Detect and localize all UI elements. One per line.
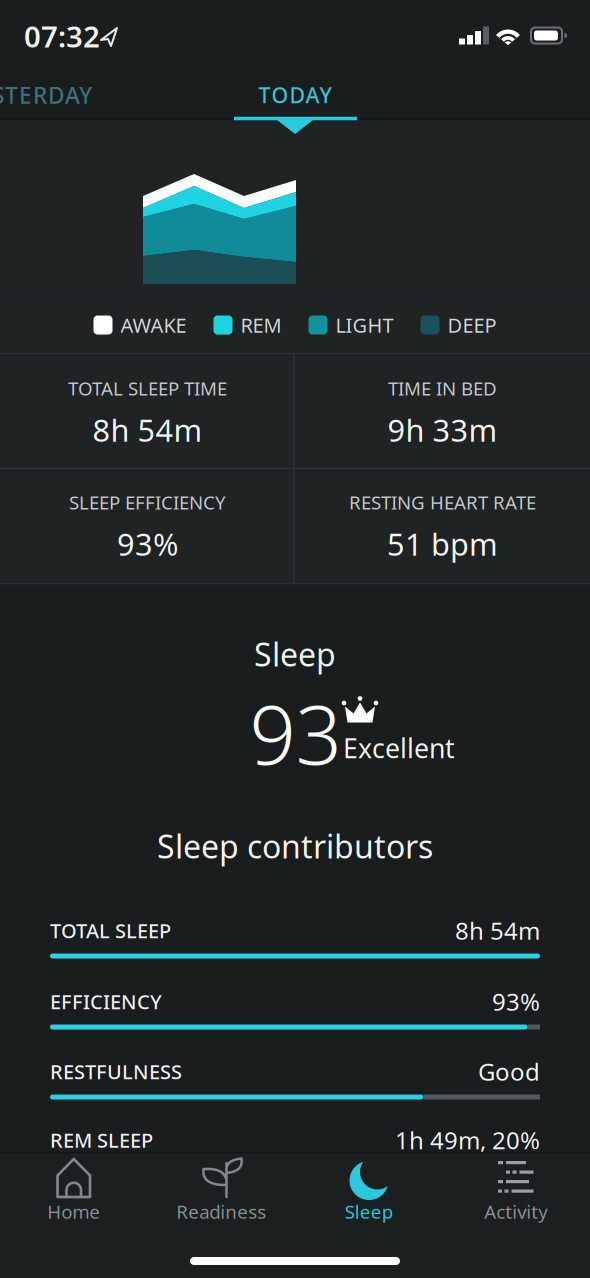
staticText: 93% xyxy=(117,523,178,564)
staticText: REM SLEEP xyxy=(50,1127,153,1153)
staticText: AWAKE xyxy=(120,312,186,338)
staticText: 8h 54m xyxy=(92,409,202,450)
staticText: Sleep xyxy=(254,633,336,675)
staticText: 1h 49m, 20% xyxy=(395,1124,540,1156)
staticText: REM xyxy=(240,312,281,338)
button[interactable]: YESTERDAY xyxy=(0,80,92,110)
staticText: LIGHT xyxy=(335,312,393,338)
staticText: Activity xyxy=(484,1199,548,1224)
staticText: 51 bpm xyxy=(387,523,498,564)
staticText: Excellent xyxy=(343,730,455,766)
button[interactable]: Sleep xyxy=(295,1152,442,1224)
staticText: 93% xyxy=(492,986,540,1017)
button[interactable]: Home xyxy=(0,1152,147,1224)
staticText: Readiness xyxy=(176,1199,266,1224)
staticText: Home xyxy=(47,1199,100,1224)
staticText: 93 xyxy=(249,679,341,787)
staticText: TIME IN BED xyxy=(388,376,497,400)
staticText: RESTING HEART RATE xyxy=(349,490,536,514)
button[interactable]: Activity xyxy=(443,1152,590,1224)
staticText: 07:32 xyxy=(24,16,100,55)
button[interactable]: Readiness xyxy=(148,1152,295,1224)
staticText: Good xyxy=(478,1056,540,1087)
staticText: Sleep xyxy=(345,1199,393,1224)
button[interactable]: TODAY xyxy=(258,81,331,109)
staticText: YESTERDAY xyxy=(0,80,92,110)
staticText: SLEEP EFFICIENCY xyxy=(69,490,226,514)
staticText: TOTAL SLEEP TIME xyxy=(68,376,227,400)
staticText: Sleep contributors xyxy=(157,825,433,867)
staticText: 8h 54m xyxy=(455,915,540,946)
staticText: DEEP xyxy=(447,312,496,338)
staticText: 9h 33m xyxy=(387,409,497,450)
staticText: RESTFULNESS xyxy=(50,1058,182,1085)
staticText: TOTAL SLEEP xyxy=(50,917,171,944)
staticText: TODAY xyxy=(258,81,331,109)
staticText: EFFICIENCY xyxy=(50,988,162,1015)
